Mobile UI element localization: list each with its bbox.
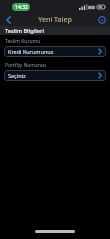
- button[interactable]: Yardım: [94, 13, 110, 26]
- staticText: 14:32: [15, 4, 28, 11]
- staticText: Portföy Numarası: [5, 62, 47, 69]
- button[interactable]: Seçiniz: [4, 70, 106, 81]
- staticText: Kredi Kurumunuz: [8, 48, 98, 55]
- staticText: Seçiniz: [8, 72, 98, 79]
- staticText: Teslim Bilgileri: [5, 27, 44, 34]
- button[interactable]: Kredi Kurumunuz: [4, 46, 106, 57]
- staticText: Teslim Kurumu: [5, 38, 41, 45]
- staticText: Yeni Talep: [38, 15, 72, 25]
- button[interactable]: Geri: [0, 13, 16, 26]
